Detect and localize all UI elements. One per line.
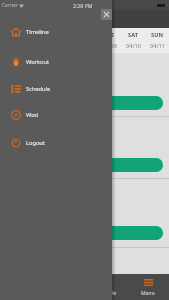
button[interactable]	[0, 117, 169, 179]
staticText: Workout	[26, 58, 50, 66]
button[interactable]: Timeline	[0, 23, 112, 41]
button[interactable]: Workout	[0, 53, 112, 71]
staticText: Logout	[26, 139, 45, 147]
button[interactable]: Logout	[0, 134, 112, 152]
staticText: Carrier	[2, 2, 18, 9]
staticText: 04/10	[126, 42, 141, 50]
button[interactable]: SAT	[121, 28, 145, 53]
button[interactable]: TUE	[25, 28, 49, 53]
staticText: SAT	[128, 31, 138, 39]
button[interactable]: FRI	[97, 28, 121, 53]
button[interactable]	[0, 248, 169, 274]
button[interactable]: Schedule	[0, 80, 112, 98]
staticText: MON	[5, 31, 20, 39]
staticText: Schedule	[26, 85, 51, 93]
button[interactable]: Close	[101, 9, 112, 20]
staticText: Wod	[26, 111, 39, 119]
staticText: Menu	[141, 290, 155, 297]
button[interactable]: Wod	[0, 106, 112, 124]
staticText: FRI	[105, 31, 114, 39]
staticText: 2:28 PM	[73, 2, 93, 9]
staticText: Schedule	[95, 290, 117, 297]
staticText: Timeline	[26, 28, 49, 36]
staticText: 04/11	[150, 42, 165, 50]
button[interactable]: Menu	[127, 274, 169, 300]
staticText: 04/09	[102, 42, 117, 50]
button[interactable]: MON	[0, 28, 25, 53]
button[interactable]	[0, 53, 169, 117]
button[interactable]: SUN	[145, 28, 169, 53]
staticText: TUE	[32, 31, 43, 39]
staticText: SUN	[151, 31, 163, 39]
button[interactable]: Schedule	[85, 274, 127, 300]
button[interactable]	[0, 179, 169, 248]
